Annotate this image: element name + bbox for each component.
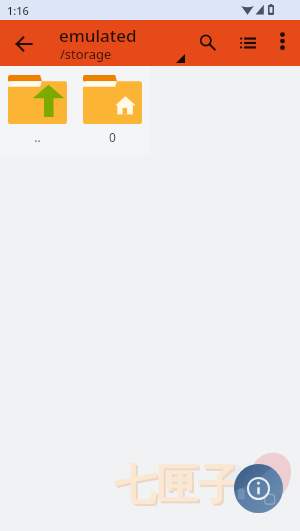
button[interactable]: Search bbox=[187, 22, 227, 62]
button[interactable]: .. bbox=[0, 66, 75, 155]
staticText: emulated bbox=[59, 24, 137, 47]
staticText: 0 bbox=[109, 129, 116, 145]
staticText: /storage bbox=[60, 45, 112, 63]
staticText: 七匣子 bbox=[114, 459, 240, 512]
button[interactable]: List view bbox=[228, 23, 268, 63]
button[interactable]: Back bbox=[2, 22, 46, 66]
staticText: 七匣子 bbox=[116, 461, 242, 514]
button[interactable]: App logo bbox=[234, 464, 283, 513]
button[interactable]: 0 bbox=[75, 66, 150, 155]
button[interactable]: More options bbox=[265, 24, 299, 58]
staticText: .. bbox=[34, 129, 41, 145]
staticText: 1:16 bbox=[7, 3, 29, 18]
